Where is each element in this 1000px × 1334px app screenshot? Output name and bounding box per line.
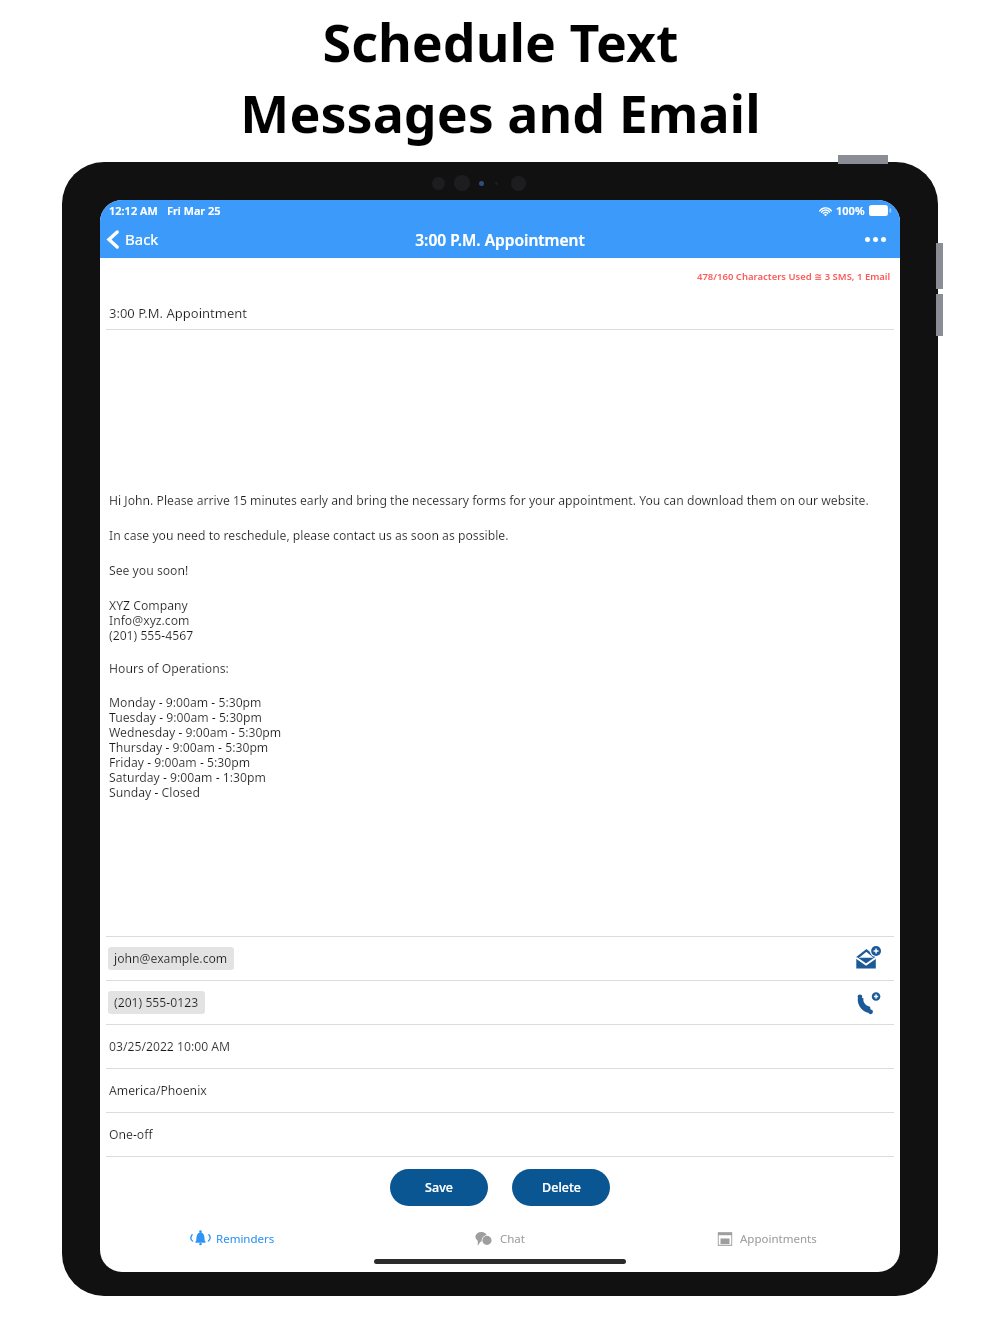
staticText: Messages and Email <box>240 77 761 148</box>
button[interactable]: 3:00 P.M. Appointment <box>100 296 900 329</box>
staticText: Delete <box>542 1179 581 1196</box>
button[interactable]: Save <box>390 1169 488 1206</box>
staticText: 100% <box>836 203 865 218</box>
staticText: 03/25/2022 10:00 AM <box>109 1038 231 1055</box>
staticText: 478/160 Characters Used ≅ 3 SMS, 1 Email <box>697 270 891 283</box>
staticText: Appointments <box>740 1231 817 1247</box>
button[interactable]: (201) 555-0123 <box>100 981 900 1024</box>
staticText: Save <box>425 1179 453 1196</box>
staticText: 3:00 P.M. Appointment <box>109 304 247 322</box>
staticText: Back <box>125 229 159 249</box>
staticText: In case you need to reschedule, please c… <box>109 527 509 544</box>
button[interactable]: 03/25/2022 10:00 AM <box>100 1025 900 1068</box>
staticText: Hours of Operations: <box>109 660 229 677</box>
button[interactable]: Reminders <box>100 1223 366 1254</box>
staticText: 3:00 P.M. Appointment <box>415 229 585 250</box>
button[interactable]: Back <box>100 222 169 256</box>
button[interactable]: Delete <box>512 1169 610 1206</box>
button[interactable]: America/Phoenix <box>100 1069 900 1112</box>
button[interactable]: Chat <box>366 1223 633 1254</box>
staticText: Schedule Text <box>322 6 679 77</box>
staticText: Fri Mar 25 <box>167 203 221 218</box>
staticText: See you soon! <box>109 562 189 579</box>
button[interactable]: Add email recipient <box>853 944 883 974</box>
button[interactable]: Add phone number <box>853 988 883 1018</box>
staticText: One-off <box>109 1126 153 1143</box>
staticText: john@example.com <box>114 950 228 967</box>
staticText: Monday - 9:00am - 5:30pm Tuesday - 9:00a… <box>109 694 282 800</box>
button[interactable]: One-off <box>100 1113 900 1156</box>
staticText: XYZ Company Info@xyz.com (201) 555-4567 <box>109 597 194 643</box>
staticText: Chat <box>500 1231 525 1247</box>
button[interactable]: Appointments <box>633 1224 900 1254</box>
button[interactable]: john@example.com <box>100 937 900 980</box>
staticText: America/Phoenix <box>109 1082 207 1099</box>
staticText: Reminders <box>216 1231 275 1247</box>
button[interactable]: More options <box>851 226 900 253</box>
staticText: 12:12 AM <box>109 203 158 218</box>
staticText: Hi John. Please arrive 15 minutes early … <box>109 492 869 509</box>
staticText: (201) 555-0123 <box>114 994 199 1011</box>
